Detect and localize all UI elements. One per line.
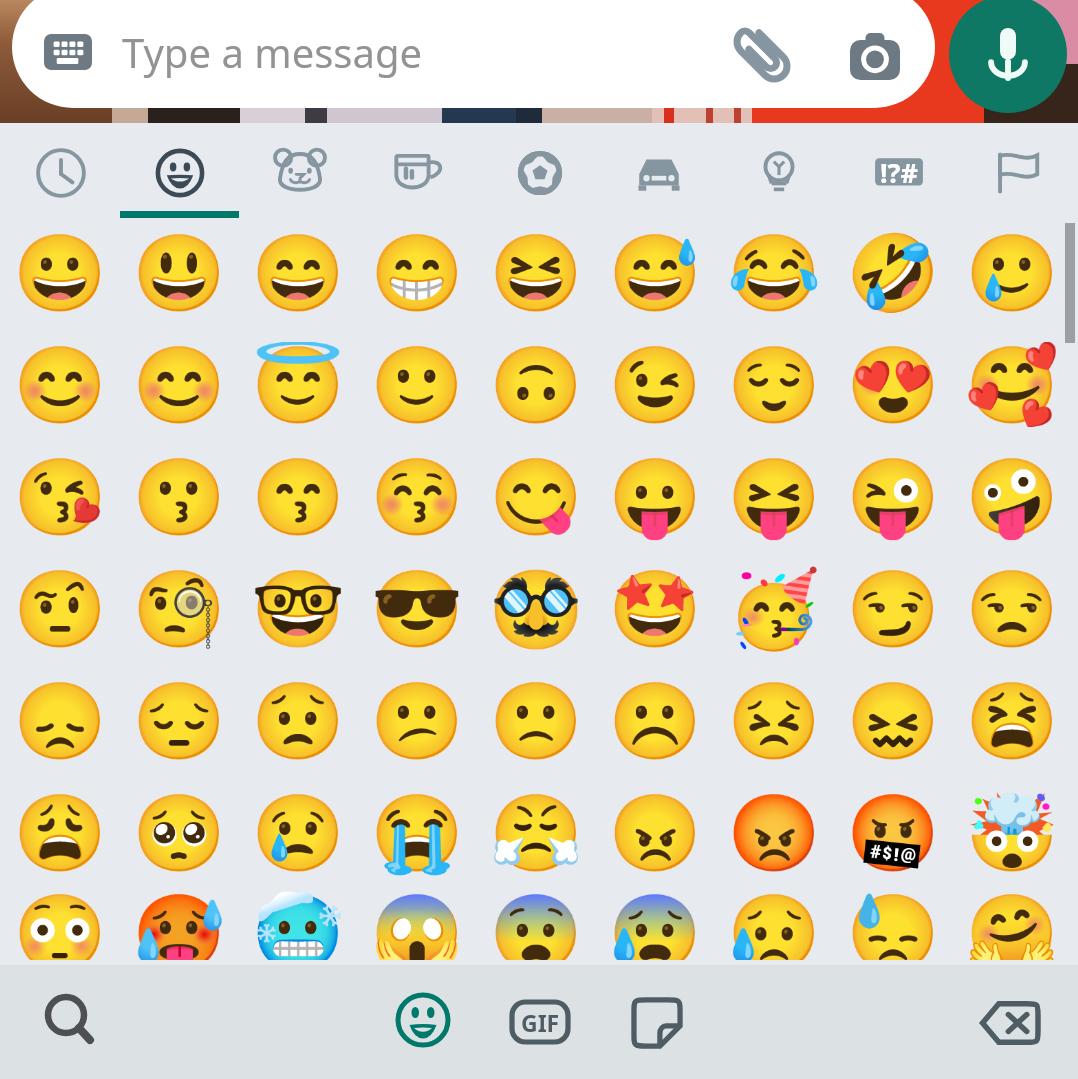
button[interactable]: 🤗 [952, 890, 1071, 960]
button[interactable]: 🥸 [476, 554, 595, 666]
button[interactable]: Smileys [120, 123, 239, 223]
button[interactable]: 😆 [476, 218, 595, 330]
button[interactable]: 😫 [952, 666, 1071, 778]
staticText: 😇 [251, 342, 345, 430]
button[interactable]: 😋 [476, 442, 595, 554]
button[interactable]: 😞 [0, 666, 119, 778]
button[interactable]: 🥺 [119, 778, 238, 890]
staticText: 😭 [370, 790, 464, 878]
button[interactable]: 😤 [476, 778, 595, 890]
button[interactable]: Activities [480, 123, 599, 223]
button[interactable]: Food [360, 123, 479, 223]
button[interactable]: 😓 [833, 890, 952, 960]
button[interactable]: 😰 [595, 890, 714, 960]
button[interactable]: Travel [599, 123, 718, 223]
button[interactable]: 🙁 [476, 666, 595, 778]
button[interactable]: 😕 [357, 666, 476, 778]
button[interactable] [12, 0, 935, 108]
button[interactable]: 😳 [0, 890, 119, 960]
button[interactable]: Attach [722, 14, 802, 94]
staticText: ☹️ [608, 678, 702, 766]
button[interactable]: 🙃 [476, 330, 595, 442]
button[interactable]: 😛 [595, 442, 714, 554]
button[interactable]: 🤩 [595, 554, 714, 666]
staticText: 🥶 [251, 890, 345, 960]
staticText: 🥵 [132, 890, 226, 960]
button[interactable]: 🥵 [119, 890, 238, 960]
button[interactable]: 😱 [357, 890, 476, 960]
staticText: 😊 [132, 342, 226, 430]
button[interactable]: 😂 [714, 218, 833, 330]
staticText: 🤓 [251, 566, 345, 654]
button[interactable]: 😄 [238, 218, 357, 330]
button[interactable]: Flags [958, 123, 1077, 223]
staticText: 🥲 [965, 230, 1059, 318]
button[interactable]: Voice message [949, 0, 1067, 113]
button[interactable]: 😜 [833, 442, 952, 554]
button[interactable]: 😊 [0, 330, 119, 442]
button[interactable]: 😝 [714, 442, 833, 554]
button[interactable]: 😟 [238, 666, 357, 778]
button[interactable]: 🤣 [833, 218, 952, 330]
button[interactable]: 😃 [119, 218, 238, 330]
button[interactable]: 😀 [0, 218, 119, 330]
staticText: 😖 [846, 678, 940, 766]
button[interactable]: 🤯 [952, 778, 1071, 890]
button[interactable]: 😊 [119, 330, 238, 442]
button[interactable]: 😅 [595, 218, 714, 330]
button[interactable]: 😠 [595, 778, 714, 890]
button[interactable]: 😍 [833, 330, 952, 442]
button[interactable]: 😔 [119, 666, 238, 778]
button[interactable]: 😒 [952, 554, 1071, 666]
button[interactable]: 🙂 [357, 330, 476, 442]
button[interactable]: Recent [1, 123, 120, 223]
button[interactable]: 🤨 [0, 554, 119, 666]
button[interactable]: Animals [240, 123, 359, 223]
button[interactable]: 😖 [833, 666, 952, 778]
button[interactable]: 😇 [238, 330, 357, 442]
button[interactable]: 🥲 [952, 218, 1071, 330]
staticText: 😜 [846, 454, 940, 542]
button[interactable]: 🥳 [714, 554, 833, 666]
button[interactable]: 😨 [476, 890, 595, 960]
button[interactable]: 😁 [357, 218, 476, 330]
button[interactable]: 😩 [0, 778, 119, 890]
button[interactable]: 🤬 [833, 778, 952, 890]
button[interactable]: 🧐 [119, 554, 238, 666]
button[interactable]: 😣 [714, 666, 833, 778]
button[interactable]: ☹️ [595, 666, 714, 778]
button[interactable]: 😢 [238, 778, 357, 890]
button[interactable]: 😘 [0, 442, 119, 554]
staticText: 😤 [489, 790, 583, 878]
button[interactable]: 😌 [714, 330, 833, 442]
staticText: 😩 [13, 790, 107, 878]
button[interactable]: Keyboard [34, 19, 102, 85]
button[interactable]: 😏 [833, 554, 952, 666]
button[interactable]: GIF [500, 982, 580, 1062]
button[interactable]: Emoji [383, 980, 463, 1060]
button[interactable]: Camera [840, 21, 910, 91]
button[interactable]: 😚 [357, 442, 476, 554]
button[interactable]: Backspace [970, 983, 1050, 1063]
button[interactable]: Objects [719, 123, 838, 223]
button[interactable]: 😉 [595, 330, 714, 442]
button[interactable]: 🤪 [952, 442, 1071, 554]
button[interactable]: Stickers [617, 983, 697, 1063]
button[interactable]: Symbols [839, 123, 958, 223]
button[interactable]: 🥰 [952, 330, 1071, 442]
staticText: 😫 [965, 678, 1059, 766]
button[interactable]: Search [26, 976, 106, 1056]
button[interactable]: 😡 [714, 778, 833, 890]
button[interactable]: 😭 [357, 778, 476, 890]
staticText: 🤬 [846, 790, 940, 878]
button[interactable]: 😥 [714, 890, 833, 960]
button[interactable]: 😙 [238, 442, 357, 554]
button[interactable]: 🤓 [238, 554, 357, 666]
button[interactable]: 😗 [119, 442, 238, 554]
staticText: 😃 [132, 230, 226, 318]
button[interactable]: 🥶 [238, 890, 357, 960]
staticText: 🥰 [965, 342, 1059, 430]
button[interactable]: 😎 [357, 554, 476, 666]
staticText: 😝 [727, 454, 821, 542]
staticText: 😚 [370, 454, 464, 542]
